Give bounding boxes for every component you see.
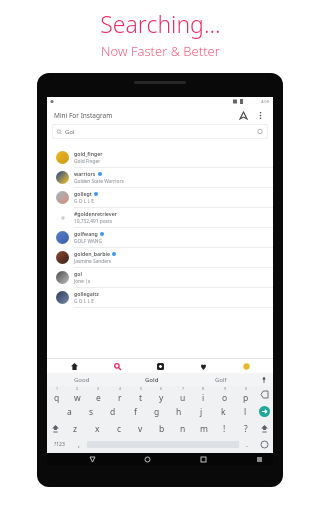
button[interactable]: Activity: [187, 359, 219, 373]
staticText: u: [180, 392, 186, 403]
button[interactable]: Back: [82, 453, 102, 465]
button[interactable]: Golf: [186, 373, 255, 386]
button[interactable]: warriors: [47, 168, 273, 187]
button[interactable]: Period: [239, 437, 255, 452]
button[interactable]: d: [102, 403, 124, 420]
staticText: 8: [202, 386, 205, 391]
button[interactable]: 8: [193, 386, 214, 403]
staticText: Now Faster & Better: [101, 42, 220, 60]
staticText: !: [223, 423, 226, 435]
button[interactable]: 7: [172, 386, 193, 403]
button[interactable]: n: [172, 420, 193, 437]
button[interactable]: a: [58, 403, 80, 420]
staticText: i: [202, 392, 205, 403]
staticText: r: [118, 392, 122, 403]
button[interactable]: g: [146, 403, 168, 420]
staticText: e: [96, 392, 101, 403]
button[interactable]: 4: [109, 386, 130, 403]
staticText: c: [117, 423, 122, 435]
staticText: 2: [76, 386, 79, 391]
staticText: q: [54, 392, 60, 403]
button[interactable]: gold_finger: [47, 148, 273, 167]
button[interactable]: gollegt: [47, 188, 273, 207]
button[interactable]: Voice input: [255, 373, 273, 386]
staticText: l: [244, 406, 247, 418]
button[interactable]: s: [80, 403, 102, 420]
staticText: 7: [182, 386, 185, 391]
button[interactable]: gollegaitz: [47, 288, 273, 307]
staticText: z: [73, 423, 77, 435]
button[interactable]: b: [151, 420, 172, 437]
button[interactable]: Gol: [52, 124, 268, 139]
button[interactable]: x: [86, 420, 108, 437]
button[interactable]: 6: [151, 386, 172, 403]
staticText: 10,752,491 posts: [74, 218, 112, 225]
staticText: n: [180, 423, 186, 435]
button[interactable]: Recents: [193, 453, 213, 465]
button[interactable]: 3: [88, 386, 109, 403]
staticText: gol: [74, 270, 82, 277]
button[interactable]: Hide keyboard: [249, 453, 269, 465]
button[interactable]: l: [234, 403, 256, 420]
button[interactable]: Gold: [117, 373, 186, 386]
button[interactable]: 0: [235, 386, 256, 403]
button[interactable]: v: [130, 420, 151, 437]
button[interactable]: Comma: [71, 437, 87, 452]
staticText: k: [221, 406, 226, 418]
button[interactable]: m: [193, 420, 214, 437]
staticText: Jasmine Sanders: [74, 258, 112, 265]
button[interactable]: Emoji: [255, 437, 273, 452]
button[interactable]: f: [124, 403, 146, 420]
staticText: s: [89, 406, 94, 418]
button[interactable]: golfwang: [47, 228, 273, 247]
button[interactable]: Backspace: [256, 386, 273, 403]
button[interactable]: Shift right: [256, 420, 273, 437]
staticText: Searching...: [100, 8, 221, 39]
button[interactable]: Home: [137, 453, 157, 465]
button[interactable]: Home: [58, 359, 90, 373]
button[interactable]: More options: [254, 109, 266, 121]
staticText: Good: [74, 376, 90, 384]
button[interactable]: k: [212, 403, 234, 420]
staticText: Jone |x: [74, 278, 91, 285]
staticText: d: [110, 406, 116, 418]
button[interactable]: z: [64, 420, 86, 437]
button[interactable]: golden_barbie: [47, 248, 273, 267]
button[interactable]: ?123: [47, 437, 71, 452]
staticText: G O L L E: [74, 298, 94, 305]
button[interactable]: 5: [130, 386, 151, 403]
button[interactable]: Profile: [230, 359, 262, 373]
button[interactable]: 2: [67, 386, 88, 403]
button[interactable]: 1: [47, 386, 67, 403]
button[interactable]: #: [47, 208, 273, 227]
staticText: a: [67, 406, 72, 418]
button[interactable]: gol: [47, 268, 273, 287]
button[interactable]: Good: [47, 373, 117, 386]
staticText: 9: [224, 386, 227, 391]
staticText: x: [95, 423, 100, 435]
button[interactable]: j: [190, 403, 212, 420]
staticText: gollegt: [74, 190, 92, 197]
staticText: 5: [140, 386, 143, 391]
staticText: golfwang: [74, 230, 98, 237]
staticText: ,: [78, 440, 80, 450]
staticText: 1: [56, 386, 59, 391]
button[interactable]: ?: [235, 420, 256, 437]
button[interactable]: c: [108, 420, 130, 437]
button[interactable]: 9: [214, 386, 235, 403]
staticText: gollegaitz: [74, 290, 99, 297]
staticText: golden_barbie: [74, 250, 110, 257]
button[interactable]: h: [168, 403, 190, 420]
button[interactable]: Navigate: [237, 109, 249, 121]
button[interactable]: Add post: [144, 359, 176, 373]
staticText: j: [200, 406, 203, 418]
staticText: v: [138, 423, 143, 435]
staticText: g: [154, 406, 160, 418]
button[interactable]: Enter: [256, 403, 273, 420]
button[interactable]: !: [214, 420, 235, 437]
staticText: Gol: [65, 128, 75, 136]
staticText: G O L L E: [74, 198, 94, 205]
button[interactable]: Search: [101, 359, 133, 373]
button[interactable]: Shift: [47, 420, 64, 437]
